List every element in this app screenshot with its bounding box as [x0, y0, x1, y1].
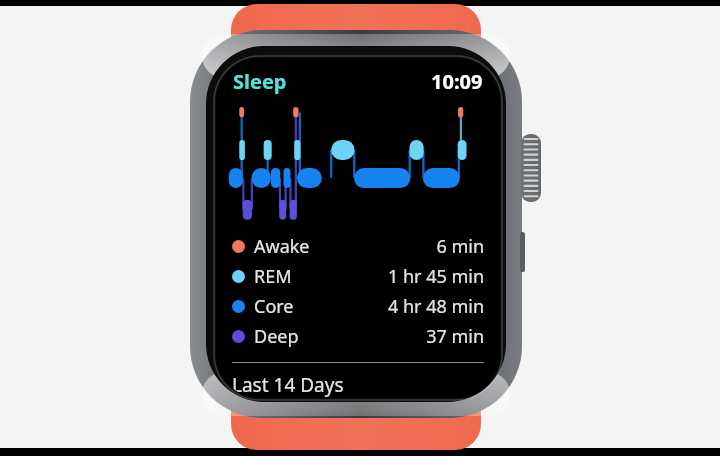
button[interactable]: Last 14 Days	[232, 372, 500, 398]
staticText: REM	[254, 264, 292, 289]
button[interactable]: REM	[232, 261, 484, 291]
staticText: 6 min	[436, 234, 484, 259]
staticText: 10:09	[431, 68, 483, 95]
button[interactable]: Core	[232, 291, 484, 321]
staticText: Core	[254, 294, 294, 319]
staticText: 37 min	[426, 324, 484, 349]
staticText: Deep	[254, 324, 299, 349]
staticText: 1 hr 45 min	[387, 264, 484, 289]
button[interactable]: Sleep	[233, 68, 483, 95]
staticText: Sleep	[233, 68, 287, 95]
staticText: Last 14 Days	[232, 372, 344, 398]
button[interactable]: Deep	[232, 321, 484, 351]
button[interactable]: Sleep stages chart	[224, 103, 492, 225]
staticText: 4 hr 48 min	[387, 294, 484, 319]
button[interactable]: Awake	[232, 231, 484, 261]
staticText: Awake	[254, 234, 310, 259]
